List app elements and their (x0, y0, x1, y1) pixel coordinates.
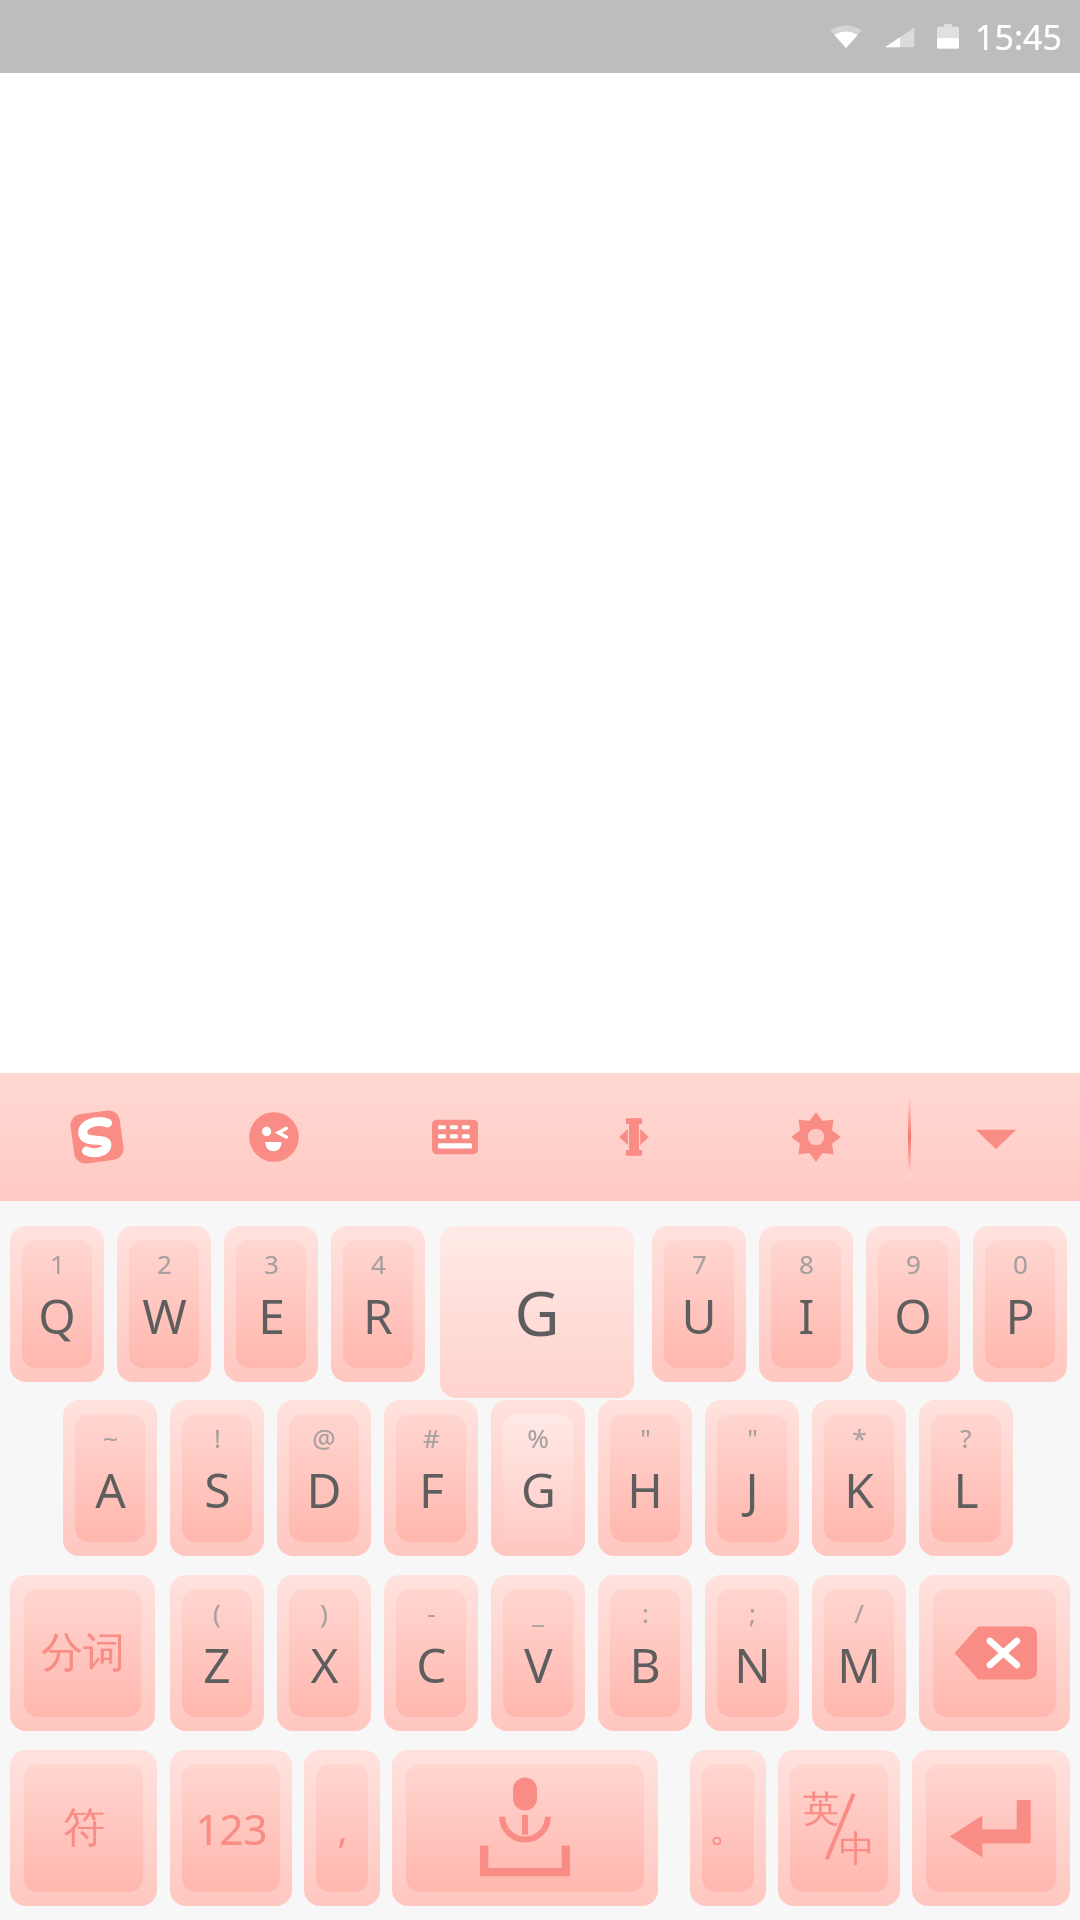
staticText: , (337, 1802, 348, 1854)
staticText: ( (213, 1595, 221, 1630)
staticText: Z (203, 1632, 231, 1697)
staticText: 9 (906, 1246, 921, 1281)
button[interactable]: Move cursor (578, 1073, 690, 1201)
staticText: 0 (1013, 1246, 1028, 1281)
staticText: E (258, 1283, 285, 1348)
button[interactable]: 9 (866, 1226, 960, 1382)
button[interactable]: @ (277, 1400, 371, 1556)
button[interactable]: Space and voice input (392, 1750, 658, 1906)
button[interactable]: 7 (652, 1226, 746, 1382)
button[interactable]: 0 (973, 1226, 1067, 1382)
staticText: _ (532, 1595, 544, 1630)
staticText: P (1005, 1283, 1035, 1348)
staticText: J (745, 1457, 759, 1522)
button[interactable]: : (598, 1575, 692, 1731)
staticText: G (521, 1457, 556, 1522)
button[interactable]: G (440, 1226, 634, 1398)
staticText: @ (312, 1420, 336, 1455)
button[interactable]: ~ (63, 1400, 157, 1556)
button[interactable]: 3 (224, 1226, 318, 1382)
staticText: / (854, 1595, 864, 1630)
staticText: X (310, 1632, 339, 1697)
staticText: ? (960, 1420, 972, 1455)
staticText: N (734, 1632, 771, 1697)
staticText: V (524, 1632, 553, 1697)
staticText: * (852, 1420, 867, 1455)
staticText: Q (38, 1283, 76, 1348)
staticText: O (894, 1283, 932, 1348)
button[interactable]: - (384, 1575, 478, 1731)
button[interactable]: 4 (331, 1226, 425, 1382)
staticText: L (953, 1457, 979, 1522)
staticText: H (627, 1457, 663, 1522)
staticText: C (416, 1632, 447, 1697)
button[interactable]: , (304, 1750, 380, 1906)
staticText: - (427, 1595, 436, 1630)
staticText: A (95, 1457, 126, 1522)
button[interactable]: # (384, 1400, 478, 1556)
staticText: S (204, 1457, 231, 1522)
staticText: 8 (799, 1246, 814, 1281)
staticText: B (629, 1632, 661, 1697)
staticText: : (642, 1595, 649, 1630)
staticText: M (837, 1632, 881, 1697)
staticText: " (640, 1420, 651, 1455)
button[interactable]: Backspace (919, 1575, 1070, 1731)
button[interactable]: Enter (912, 1750, 1070, 1906)
button[interactable]: _ (491, 1575, 585, 1731)
staticText: ) (320, 1595, 328, 1630)
staticText: 123 (195, 1800, 268, 1857)
staticText: 分词 (41, 1627, 125, 1680)
staticText: ; (749, 1595, 756, 1630)
staticText: I (798, 1283, 815, 1348)
staticText: 中 (839, 1826, 875, 1871)
button[interactable]: Hide keyboard (948, 1073, 1044, 1201)
staticText: % (527, 1420, 549, 1455)
staticText: # (423, 1420, 440, 1455)
staticText: 1 (50, 1246, 65, 1281)
button[interactable]: 1 (10, 1226, 104, 1382)
button[interactable]: Switch keyboard (399, 1073, 511, 1201)
button[interactable]: 分词 (10, 1575, 155, 1731)
staticText: 英 (803, 1786, 839, 1831)
button[interactable]: * (812, 1400, 906, 1556)
staticText: F (419, 1457, 444, 1522)
staticText: U (681, 1283, 717, 1348)
button[interactable]: " (705, 1400, 799, 1556)
button[interactable]: ( (170, 1575, 264, 1731)
button[interactable]: Emoji (218, 1073, 330, 1201)
staticText: R (363, 1283, 393, 1348)
button[interactable]: ) (277, 1575, 371, 1731)
staticText: D (306, 1457, 342, 1522)
staticText: " (747, 1420, 758, 1455)
button[interactable]: 2 (117, 1226, 211, 1382)
staticText: 符 (63, 1802, 105, 1855)
staticText: 7 (692, 1246, 707, 1281)
button[interactable]: ! (170, 1400, 264, 1556)
staticText: 15:45 (975, 14, 1062, 60)
staticText: 。 (709, 1804, 747, 1852)
button[interactable]: 英 (778, 1750, 900, 1906)
button[interactable]: / (812, 1575, 906, 1731)
button[interactable]: 8 (759, 1226, 853, 1382)
button[interactable]: 123 (170, 1750, 292, 1906)
button[interactable]: 符 (10, 1750, 157, 1906)
staticText: K (844, 1457, 874, 1522)
staticText: G (514, 1270, 560, 1354)
button[interactable]: Sogou input method (41, 1073, 153, 1201)
staticText: ! (214, 1420, 221, 1455)
staticText: 4 (371, 1246, 386, 1281)
staticText: W (142, 1283, 187, 1348)
button[interactable]: 。 (690, 1750, 766, 1906)
staticText: 2 (157, 1246, 172, 1281)
button[interactable]: " (598, 1400, 692, 1556)
button[interactable]: ? (919, 1400, 1013, 1556)
button[interactable]: % (491, 1400, 585, 1556)
staticText: ~ (103, 1420, 118, 1455)
staticText: 3 (264, 1246, 279, 1281)
button[interactable]: ; (705, 1575, 799, 1731)
button[interactable]: Settings (760, 1073, 872, 1201)
